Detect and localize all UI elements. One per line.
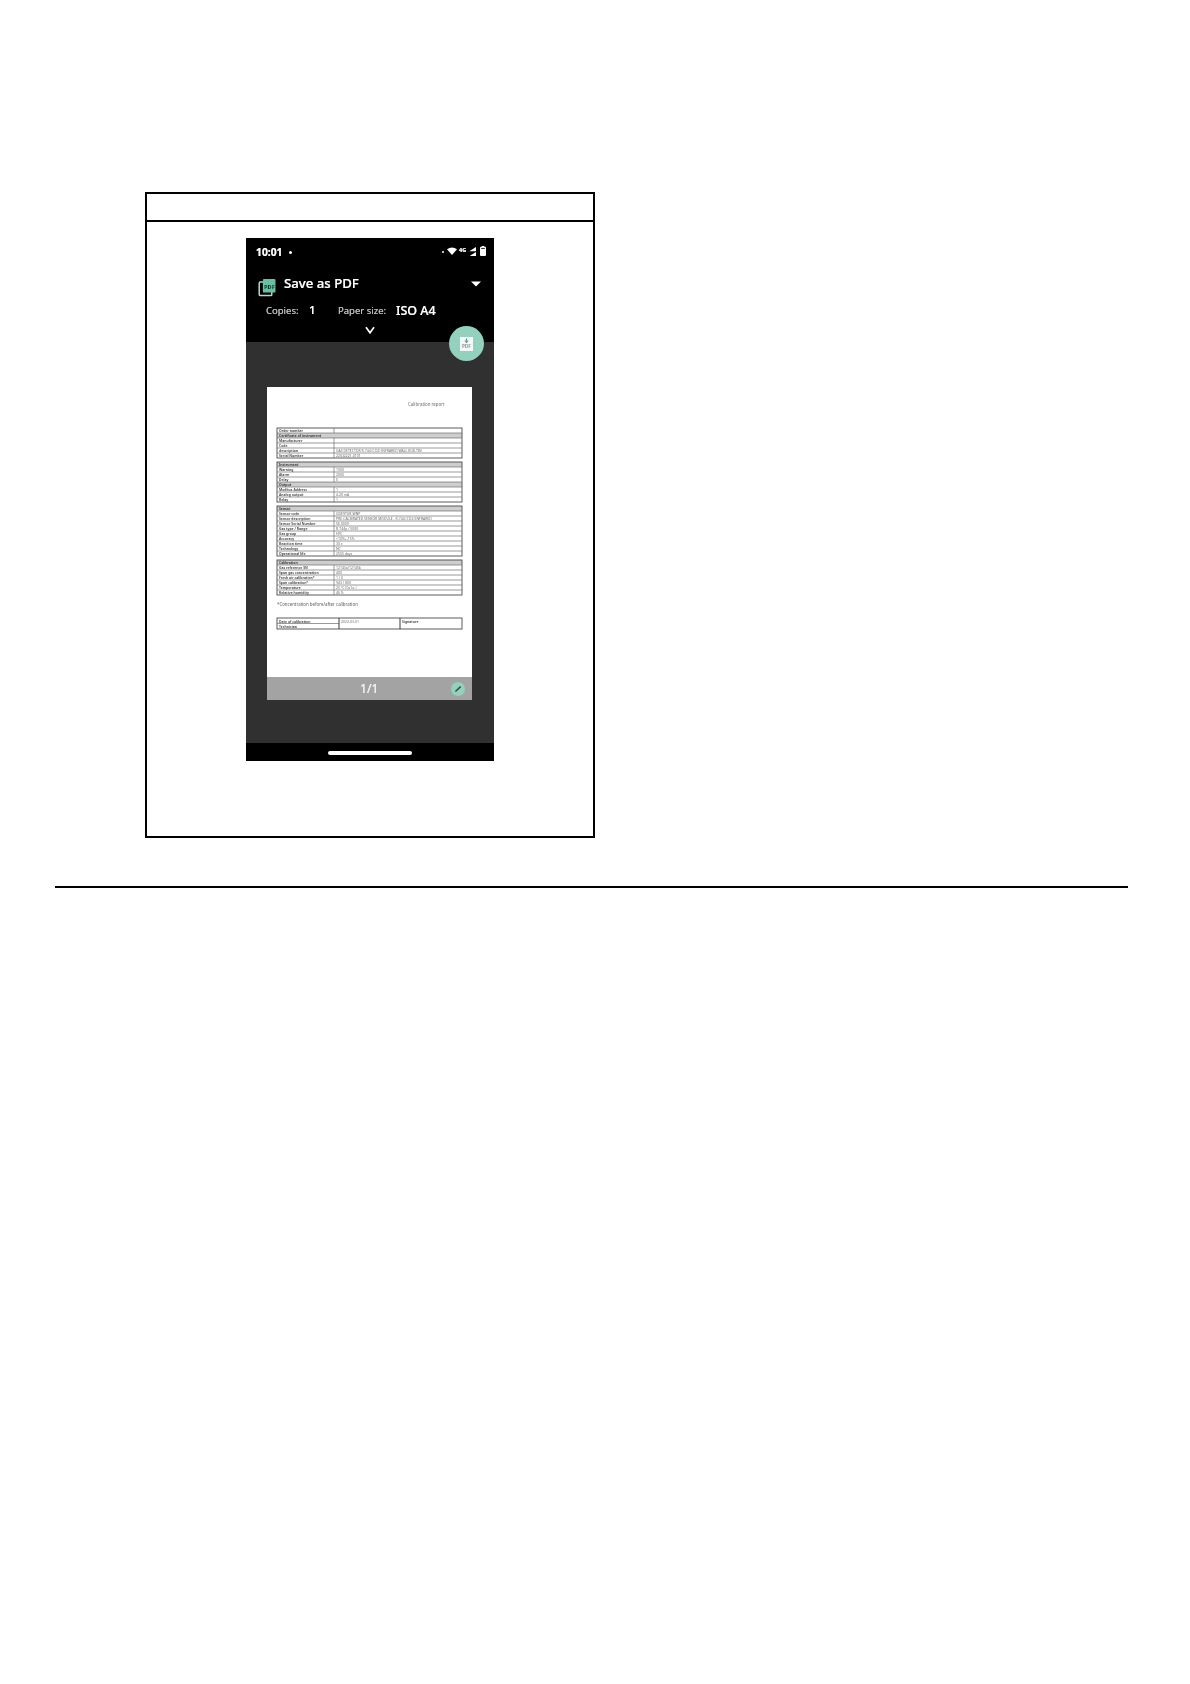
staticText: 25 °C (0±1o-) [336,585,357,590]
staticText: 943 / 800 [336,580,351,585]
staticText: Warning [279,467,294,472]
staticText: Signature [402,619,419,624]
staticText: Span calibration* [279,580,309,585]
staticText: Analog output [279,492,304,497]
staticText: Output [279,482,292,487]
staticText: 1 [336,487,338,492]
staticText: Order number [279,428,304,433]
button[interactable]: PDF [246,268,494,298]
staticText: Relay [279,497,289,502]
button[interactable]: Edit [451,682,465,696]
staticText: 2022-03-01 [341,619,359,624]
staticText: Paper size: [338,304,387,317]
staticText: Gas reference SN [279,565,308,570]
staticText: 10:01 [256,245,283,259]
staticText: SE-0000 [336,521,349,526]
staticText: Sensor [279,506,291,511]
staticText: Reaction time [279,541,303,546]
staticText: NC [336,546,341,551]
staticText: 30 s [336,541,343,546]
staticText: Sensor Serial Number [279,521,316,526]
staticText: <10%+-15% [336,536,355,541]
staticText: HFC [336,531,343,536]
staticText: Gas type / Range [279,526,308,531]
staticText: Certificate of instrument [279,433,322,438]
staticText: 2000 [336,472,344,477]
staticText: Sensor code [279,511,300,516]
staticText: 4G [459,246,467,253]
staticText: *Concentration before/after calibration [277,601,358,607]
staticText: R-744p / 5000 [336,526,359,531]
staticText: Code [279,443,288,448]
staticText: Save as PDF [284,274,359,292]
staticText: Serial Number [279,453,304,458]
staticText: Gas group [279,531,297,536]
staticText: Fresh air calibration* [279,575,315,580]
staticText: Copies: [266,304,299,317]
staticText: Sensor description [279,516,311,521]
staticText: 1000 [336,467,344,472]
staticText: 2555 days [336,551,353,556]
staticText: Span gas concentration [279,570,319,575]
staticText: 46 % [336,590,344,595]
staticText: Alarm [279,472,290,477]
staticText: 22032221-0101 [336,453,361,458]
staticText: PRE-CALIBRATED SENSOR MODULE - R-744 (CO… [336,516,432,521]
staticText: Date of calibration [279,619,311,624]
staticText: Modbus Address [279,487,307,492]
staticText: 4-20 mA [336,492,350,497]
staticText: 400 [336,570,342,575]
staticText: Operational life [279,551,306,556]
staticText: Temperature [279,585,301,590]
staticText: Calibration [279,560,298,565]
staticText: 12143a/12145b [336,565,361,570]
staticText: Accuracy [279,536,295,541]
staticText: ISO A4 [396,302,436,319]
staticText: Technology [279,546,299,551]
staticText: Relative humidity [279,590,309,595]
staticText: GDE9TUR-WNP [336,511,361,516]
staticText: Instrument [279,462,299,467]
staticText: 1 [336,497,338,502]
staticText: Delay [279,477,289,482]
staticText: GAS DETECTOR R-744 (CO2) INFRARED WALL B… [336,448,422,453]
staticText: description [279,448,299,453]
staticText: Calibration report [408,401,445,407]
staticText: PDF [264,283,275,291]
staticText: 1/1 [360,680,379,697]
staticText: 1 / 0 [336,575,343,580]
staticText: Manufacturer [279,438,303,443]
button[interactable]: Expand options [357,322,383,338]
staticText: 1 [309,302,316,318]
other: Expand printer list [471,280,481,288]
staticText: Technician [279,624,297,629]
button[interactable]: Save as PDF [449,326,484,361]
staticText: PDF [462,343,471,349]
